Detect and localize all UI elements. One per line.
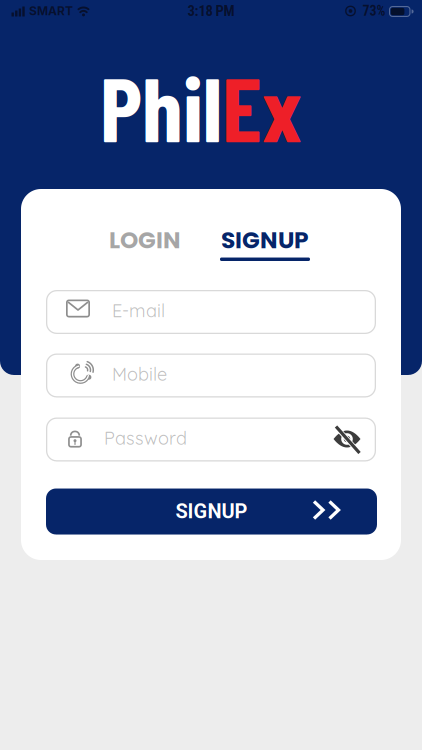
- staticText: E-mail: [112, 299, 165, 322]
- button[interactable]: SIGNUP: [46, 488, 377, 534]
- staticText: SIGNUP: [221, 224, 309, 256]
- staticText: Password: [104, 427, 187, 449]
- button[interactable]: Password: [46, 417, 376, 461]
- staticText: Mobile: [112, 363, 167, 385]
- staticText: 3:18 PM: [187, 2, 234, 20]
- staticText: LOGIN: [109, 224, 181, 256]
- staticText: Phil: [100, 52, 222, 160]
- button[interactable]: E-mail: [46, 290, 376, 334]
- staticText: SIGNUP: [175, 500, 247, 523]
- button[interactable]: SIGNUP: [200, 225, 330, 263]
- staticText: 73%: [362, 3, 385, 19]
- staticText: Ex: [222, 52, 302, 160]
- button[interactable]: Mobile: [46, 353, 376, 397]
- staticText: SMART: [29, 4, 73, 18]
- button[interactable]: [332, 425, 362, 453]
- button[interactable]: LOGIN: [80, 225, 210, 255]
